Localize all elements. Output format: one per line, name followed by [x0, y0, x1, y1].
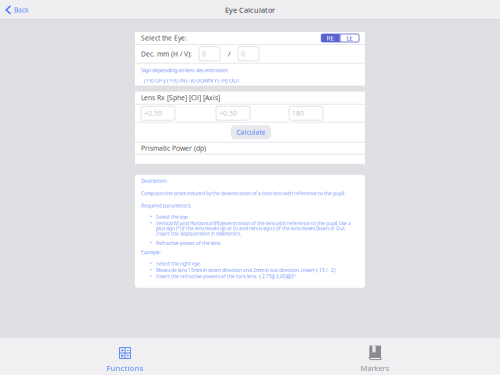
staticText: /	[228, 49, 230, 58]
staticText: (+V) UP y (+H) IN (-V) DOWN Y (-H) OUT	[144, 77, 240, 84]
staticText: Required parameters:	[141, 202, 191, 209]
staticText: 180	[292, 109, 304, 118]
staticText: •	[150, 261, 152, 267]
staticText: Moves de lens 15mm in down direction and…	[156, 267, 335, 273]
staticText: +0.50	[144, 109, 162, 118]
staticText: Back	[14, 5, 29, 15]
staticText: Example:	[141, 249, 161, 256]
button[interactable]: Back	[0, 0, 35, 20]
staticText: •	[150, 240, 152, 246]
button[interactable]: LE	[340, 34, 359, 42]
staticText: Dec. mm (H / V):	[141, 49, 192, 58]
staticText: Functions	[106, 363, 143, 373]
staticText: Insert the refractive powers of the tori…	[156, 273, 296, 280]
staticText: •	[150, 267, 152, 273]
staticText: Select the right eye.	[156, 261, 201, 267]
staticText: Markers	[360, 363, 389, 373]
staticText: Computes the prism induced by the decent…	[141, 190, 345, 197]
staticText: 0	[241, 49, 245, 58]
button[interactable]: Calculate	[231, 125, 271, 139]
staticText: Vertical (V) and Horizontal (H) decentra…	[156, 220, 351, 237]
staticText: Description:	[141, 178, 167, 184]
staticText: Select the eye.	[156, 214, 189, 220]
staticText: •	[150, 220, 152, 227]
button[interactable]: Markers	[312, 338, 437, 375]
staticText: •	[150, 214, 152, 220]
staticText: Prismatic Power (dp)	[141, 144, 206, 153]
staticText: Eye Calculator	[225, 5, 275, 15]
staticText: LE	[346, 33, 353, 43]
button[interactable]: Functions	[62, 338, 187, 375]
staticText: Calculate	[236, 128, 265, 137]
staticText: Refractive power of the lens.	[156, 240, 221, 246]
staticText: Select the Eye:	[141, 33, 187, 43]
staticText: RE	[326, 33, 334, 43]
staticText: Sign depending on lens decentration:	[141, 67, 228, 74]
staticText: •	[150, 273, 152, 280]
button[interactable]: RE	[321, 34, 340, 42]
staticText: Lens Rx [Sphe] [Cil] [Axis]	[141, 93, 220, 102]
staticText: +0.50	[219, 109, 237, 118]
staticText: 0	[202, 49, 206, 58]
